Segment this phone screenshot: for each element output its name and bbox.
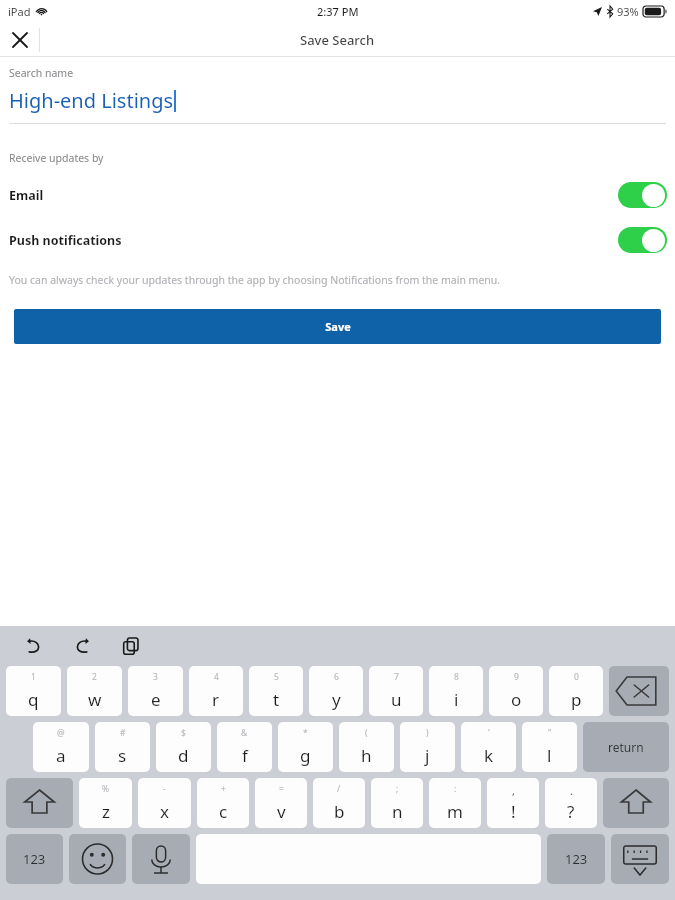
staticText: p [571,688,582,711]
staticText: q [28,688,39,711]
staticText: Save [325,319,351,334]
button[interactable]: / [313,778,365,828]
button[interactable]: Email [0,182,675,208]
staticText: d [178,744,189,767]
button[interactable]: Close [0,22,40,57]
button[interactable]: Save [14,309,661,344]
staticText: b [334,800,345,823]
staticText: 6 [334,671,339,683]
staticText: - [163,783,166,795]
staticText: u [391,688,402,711]
button[interactable]: Shift [6,778,73,828]
staticText: # [120,727,126,739]
staticText: k [484,744,494,767]
staticText: Search name [9,66,74,80]
button[interactable]: # [95,722,150,772]
staticText: % [102,783,110,795]
button[interactable]: 4 [189,666,243,716]
staticText: v [277,800,286,823]
button[interactable]: $ [156,722,211,772]
button[interactable]: ( [339,722,394,772]
staticText: n [392,800,403,823]
staticText: . [570,783,573,798]
button[interactable]: Redo [69,633,95,659]
button[interactable]: : [429,778,481,828]
staticText: + [221,783,226,795]
staticText: 93% [617,4,639,19]
button[interactable]: 8 [429,666,483,716]
button[interactable]: 9 [489,666,543,716]
staticText: j [425,744,430,767]
button[interactable]: ' [461,722,516,772]
button[interactable]: 1 [6,666,61,716]
button[interactable]: , [487,778,539,828]
staticText: 3 [153,671,158,683]
button[interactable]: " [522,722,577,772]
button[interactable]: ; [371,778,423,828]
button[interactable]: - [138,778,191,828]
button[interactable]: @ [33,722,89,772]
staticText: Save Search [300,31,375,49]
button[interactable]: . [545,778,597,828]
staticText: 0 [574,671,579,683]
button[interactable]: Backspace [609,666,669,716]
button[interactable]: 7 [369,666,423,716]
staticText: 5 [274,671,279,683]
staticText: t [273,688,280,711]
staticText: w [88,688,102,711]
staticText: Push notifications [9,232,122,249]
staticText: 4 [214,671,219,683]
button[interactable]: Paste [118,633,144,659]
staticText: 2 [92,671,97,683]
staticText: g [300,744,311,767]
staticText: $ [181,727,186,739]
button[interactable]: 123 [547,834,605,884]
button[interactable]: & [217,722,272,772]
staticText: @ [57,727,65,739]
staticText: * [303,727,308,739]
staticText: a [56,744,66,767]
button[interactable]: Push notifications [0,227,675,253]
staticText: f [242,744,248,767]
staticText: ) [426,727,429,739]
staticText: c [219,800,228,823]
staticText: ? [567,800,575,823]
staticText: & [241,727,248,739]
button[interactable]: Emoji [69,834,126,884]
staticText: , [512,783,515,798]
button[interactable]: + [197,778,249,828]
button[interactable]: 3 [128,666,183,716]
staticText: 123 [23,850,46,868]
staticText: e [151,688,161,711]
staticText: High-end Listings [9,87,174,114]
staticText: 1 [31,671,36,683]
button[interactable]: Dictation [132,834,190,884]
staticText: h [361,744,372,767]
button[interactable]: 6 [309,666,363,716]
staticText: 9 [514,671,519,683]
staticText: Receive updates by [9,151,104,165]
button[interactable]: Undo [20,633,46,659]
staticText: z [102,800,110,823]
button[interactable]: 2 [67,666,122,716]
staticText: iPad [8,4,31,19]
button[interactable]: * [278,722,333,772]
button[interactable]: return [583,722,669,772]
staticText: Email [9,187,44,204]
button[interactable]: ) [400,722,455,772]
button[interactable]: 5 [249,666,303,716]
staticText: ! [511,800,516,823]
button[interactable]: = [255,778,307,828]
staticText: You can always check your updates throug… [9,273,501,287]
button[interactable]: % [79,778,132,828]
staticText: x [160,800,169,823]
staticText: / [337,783,341,795]
staticText: 8 [454,671,459,683]
staticText: s [118,744,127,767]
button[interactable]: 123 [6,834,63,884]
button[interactable]: 0 [549,666,603,716]
staticText: " [548,727,552,739]
button[interactable]: Shift [603,778,669,828]
button[interactable]: Hide keyboard [611,834,669,884]
